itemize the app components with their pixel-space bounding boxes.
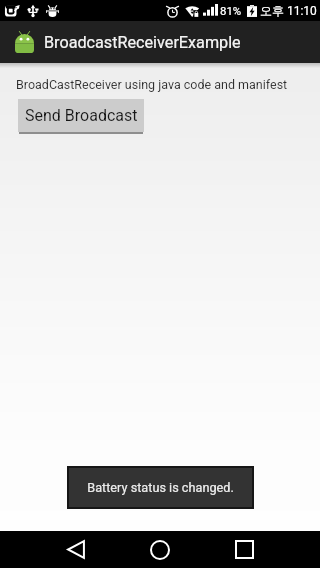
button[interactable]: Home (135, 531, 184, 568)
staticText: BroadcastReceiverExample (44, 33, 241, 52)
button[interactable]: Recent apps (220, 531, 269, 568)
staticText: Battery status is changed. (87, 480, 234, 495)
button[interactable]: Send Broadcast (18, 99, 144, 134)
staticText: 오후 11:10 (260, 3, 317, 18)
staticText: Send Broadcast (25, 106, 138, 125)
button[interactable]: Back (51, 531, 100, 568)
staticText: 81% (220, 4, 242, 17)
staticText: BroadCastReceiver using java code and ma… (16, 77, 288, 92)
